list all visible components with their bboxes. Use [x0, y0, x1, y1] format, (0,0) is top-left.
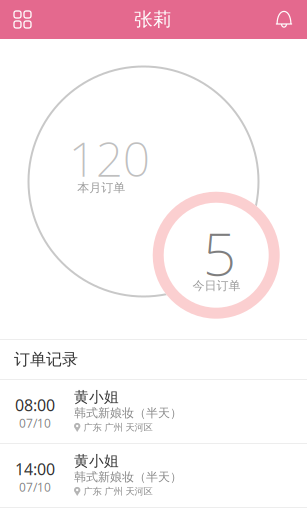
staticText: 今日订单	[193, 278, 241, 293]
staticText: 黄小姐	[74, 452, 119, 470]
staticText: 张莉	[134, 8, 172, 31]
staticText: 120	[69, 126, 150, 190]
staticText: 07/10	[19, 479, 51, 495]
button[interactable]: 14:00	[0, 444, 307, 507]
staticText: 5	[203, 214, 236, 292]
button[interactable]: Notifications	[262, 0, 306, 39]
staticText: 14:00	[15, 458, 55, 480]
staticText: 黄小姐	[74, 388, 119, 406]
staticText: 广东 广州 天河区	[83, 422, 152, 433]
staticText: 广东 广州 天河区	[83, 486, 152, 497]
button[interactable]: 08:00	[0, 380, 307, 443]
staticText: 08:00	[15, 394, 55, 416]
staticText: 07/10	[19, 415, 51, 431]
button[interactable]: Menu	[0, 0, 44, 39]
staticText: 本月订单	[77, 180, 125, 195]
staticText: 韩式新娘妆（半天）	[74, 470, 182, 484]
staticText: 订单记录	[14, 350, 78, 369]
staticText: 韩式新娘妆（半天）	[74, 406, 182, 420]
